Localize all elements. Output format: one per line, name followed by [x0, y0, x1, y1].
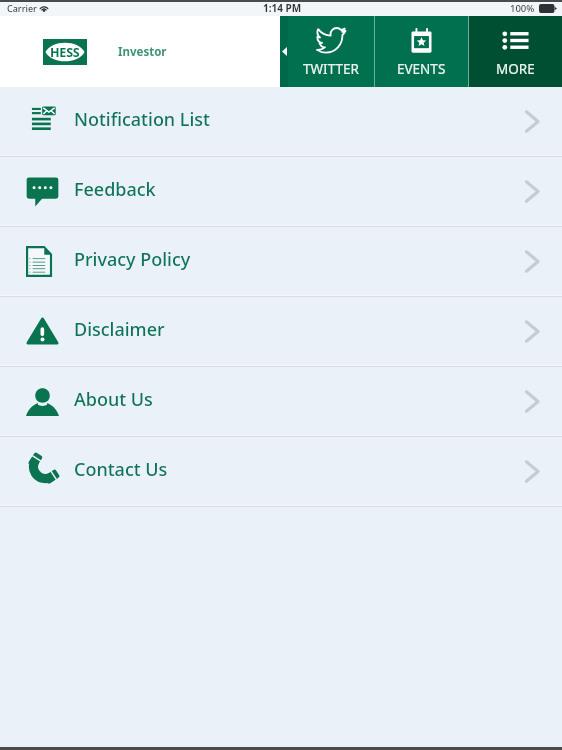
button[interactable]: Notification List: [0, 87, 562, 157]
button[interactable]: Feedback: [0, 157, 562, 227]
button[interactable]: EVENTS: [375, 16, 468, 87]
staticText: About Us: [74, 387, 153, 412]
button[interactable]: Previous tabs: [280, 16, 288, 87]
staticText: Disclaimer: [74, 317, 165, 342]
staticText: EVENTS: [397, 60, 446, 78]
staticText: Contact Us: [74, 457, 168, 482]
staticText: 100%: [510, 2, 535, 15]
staticText: HESS: [50, 44, 80, 61]
button[interactable]: About Us: [0, 367, 562, 437]
button[interactable]: TWITTER: [288, 16, 374, 87]
staticText: Notification List: [74, 107, 210, 132]
staticText: Feedback: [74, 177, 156, 202]
staticText: Investor: [118, 44, 167, 60]
staticText: Carrier: [7, 2, 37, 14]
button[interactable]: Contact Us: [0, 437, 562, 507]
button[interactable]: Privacy Policy: [0, 227, 562, 297]
button[interactable]: Disclaimer: [0, 297, 562, 367]
staticText: 1:14 PM: [263, 1, 302, 15]
staticText: MORE: [496, 60, 535, 78]
button[interactable]: MORE: [469, 16, 562, 87]
staticText: Privacy Policy: [74, 247, 191, 272]
staticText: TWITTER: [303, 60, 359, 78]
